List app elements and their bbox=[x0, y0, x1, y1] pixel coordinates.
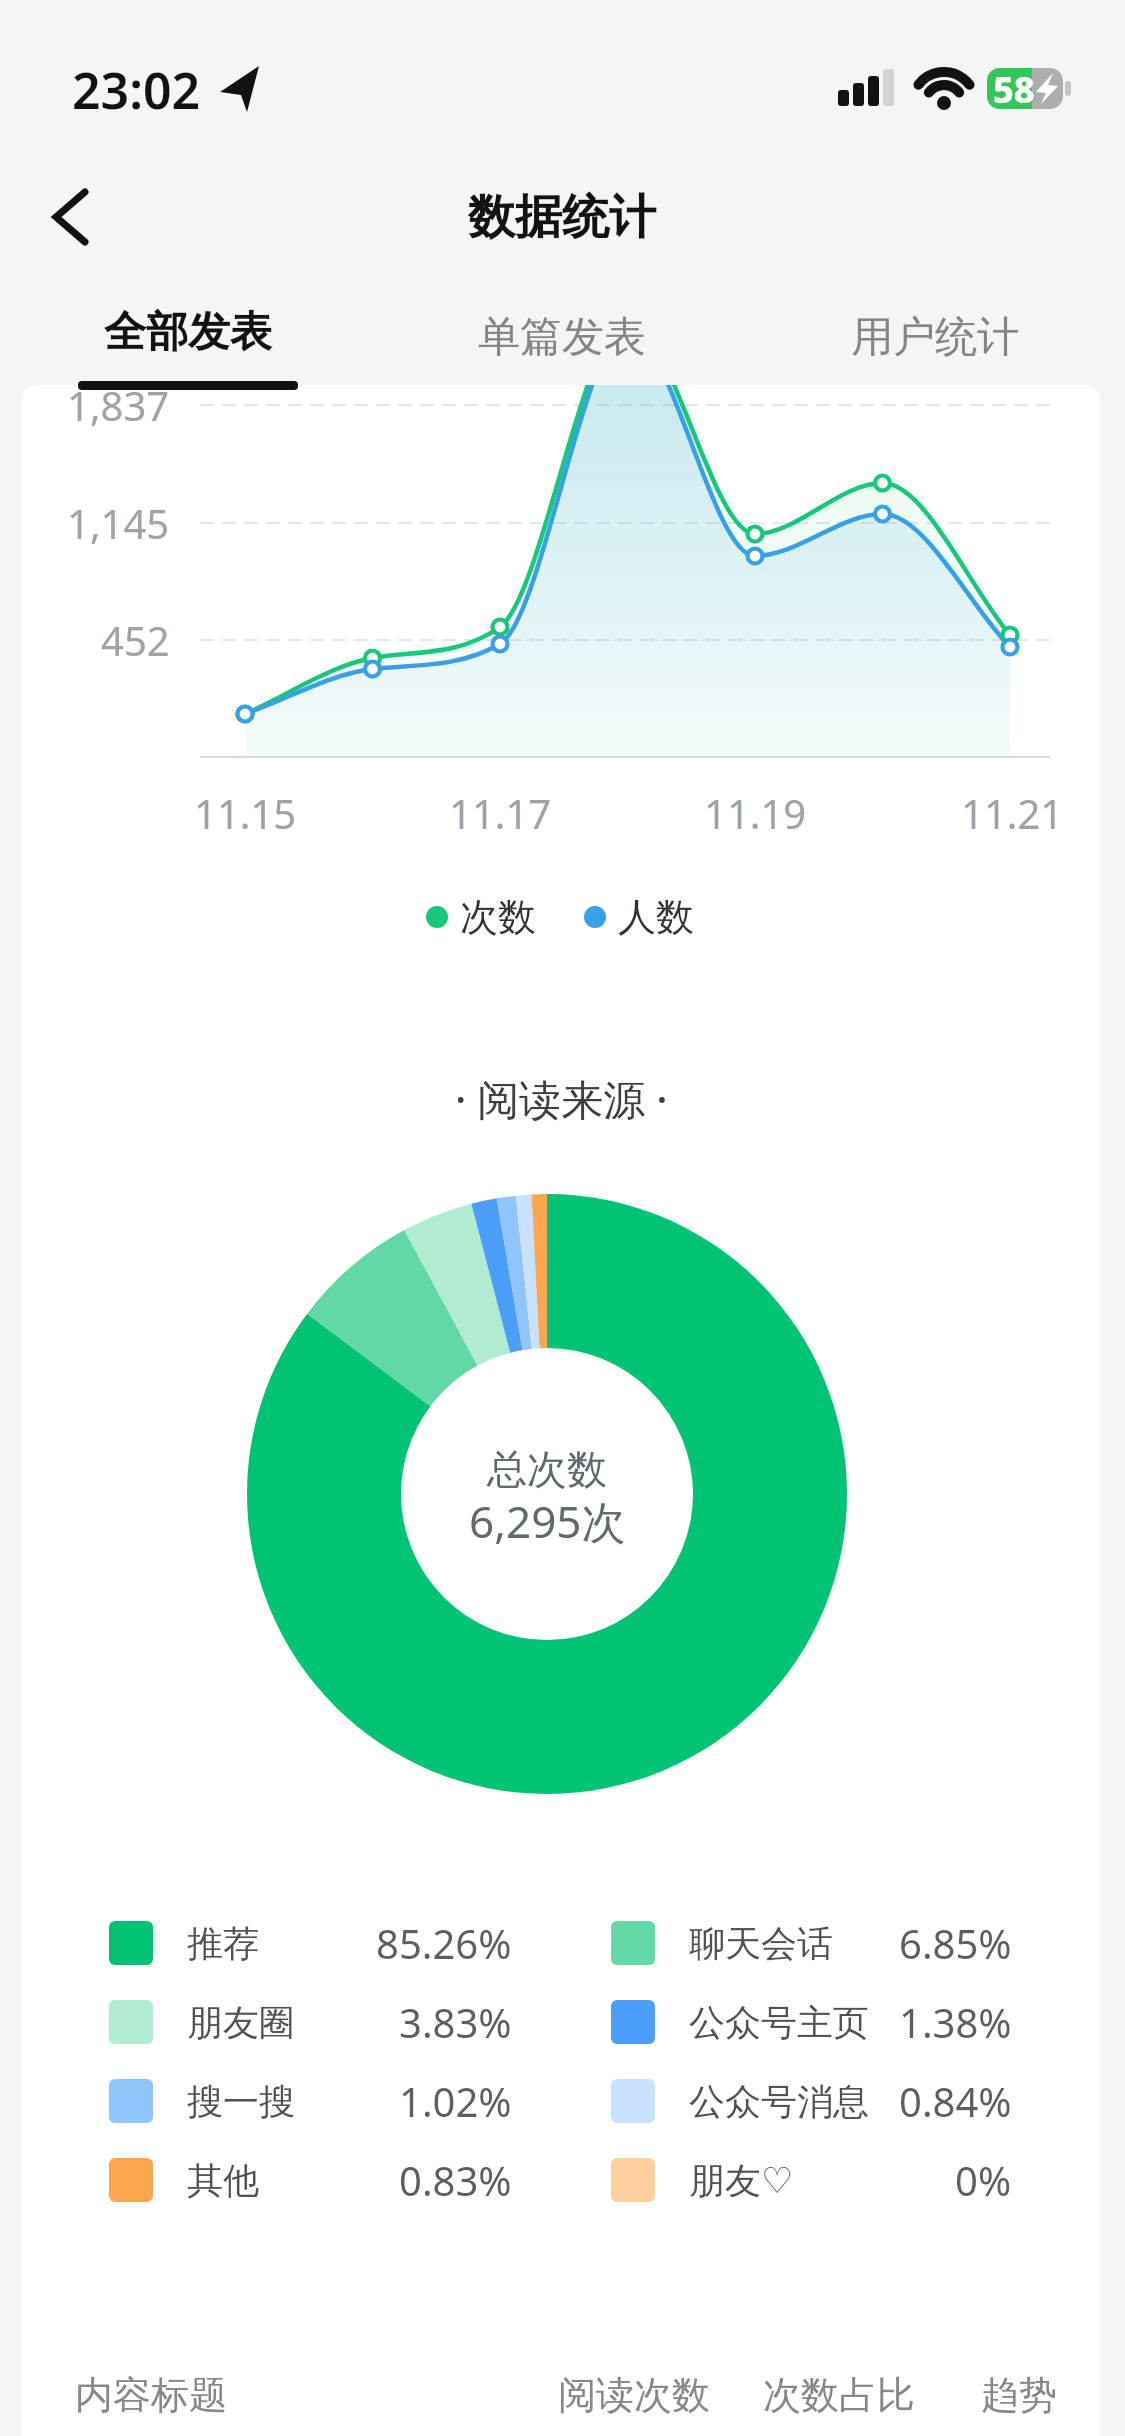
button[interactable] bbox=[60, 2355, 320, 2436]
staticText: 11.21 bbox=[961, 786, 1064, 840]
button[interactable] bbox=[550, 2355, 720, 2436]
button[interactable]: 单篇发表 bbox=[452, 295, 672, 380]
staticText: 6.85% bbox=[899, 1916, 1012, 1970]
staticText: 人数 bbox=[618, 893, 694, 941]
staticText: 11.15 bbox=[194, 786, 297, 840]
staticText: 85.26% bbox=[376, 1916, 512, 1970]
staticText: 0.84% bbox=[899, 2074, 1012, 2128]
staticText: 0.83% bbox=[399, 2153, 512, 2207]
staticText: 次数占比 bbox=[763, 2371, 915, 2419]
button[interactable] bbox=[970, 2355, 1070, 2436]
staticText: 搜一搜 bbox=[187, 2079, 295, 2124]
staticText: 朋友♡ bbox=[689, 2158, 794, 2203]
staticText: 1.02% bbox=[399, 2074, 512, 2128]
staticText: 23:02 bbox=[72, 56, 201, 124]
staticText: 公众号消息 bbox=[689, 2079, 869, 2124]
staticText: 3.83% bbox=[399, 1995, 512, 2049]
staticText: 趋势 bbox=[981, 2371, 1057, 2419]
staticText: 聊天会话 bbox=[689, 1921, 833, 1966]
staticText: 58 bbox=[993, 65, 1035, 114]
button[interactable] bbox=[30, 180, 110, 260]
staticText: 0% bbox=[955, 2153, 1012, 2207]
staticText: 推荐 bbox=[187, 1921, 259, 1966]
staticText: 数据统计 bbox=[468, 188, 656, 247]
staticText: 11.19 bbox=[704, 786, 807, 840]
staticText: 全部发表 bbox=[104, 306, 272, 359]
staticText: 6,295次 bbox=[469, 1491, 626, 1551]
staticText: 总次数 bbox=[487, 1444, 607, 1494]
staticText: 1,145 bbox=[67, 496, 170, 550]
staticText: 单篇发表 bbox=[478, 311, 646, 364]
staticText: 其他 bbox=[187, 2158, 259, 2203]
staticText: 阅读次数 bbox=[558, 2371, 710, 2419]
staticText: 用户统计 bbox=[851, 311, 1019, 364]
staticText: 452 bbox=[101, 613, 170, 667]
staticText: 1.38% bbox=[899, 1995, 1012, 2049]
button[interactable] bbox=[760, 2355, 930, 2436]
staticText: 11.17 bbox=[449, 786, 552, 840]
staticText: · 阅读来源 · bbox=[455, 1070, 668, 1127]
button[interactable]: 全部发表 bbox=[78, 286, 298, 390]
staticText: 次数 bbox=[460, 893, 536, 941]
staticText: 公众号主页 bbox=[689, 2000, 869, 2045]
button[interactable]: 用户统计 bbox=[825, 295, 1045, 380]
staticText: 朋友圈 bbox=[187, 2000, 295, 2045]
staticText: 内容标题 bbox=[75, 2371, 227, 2419]
staticText: 1,837 bbox=[67, 378, 170, 432]
